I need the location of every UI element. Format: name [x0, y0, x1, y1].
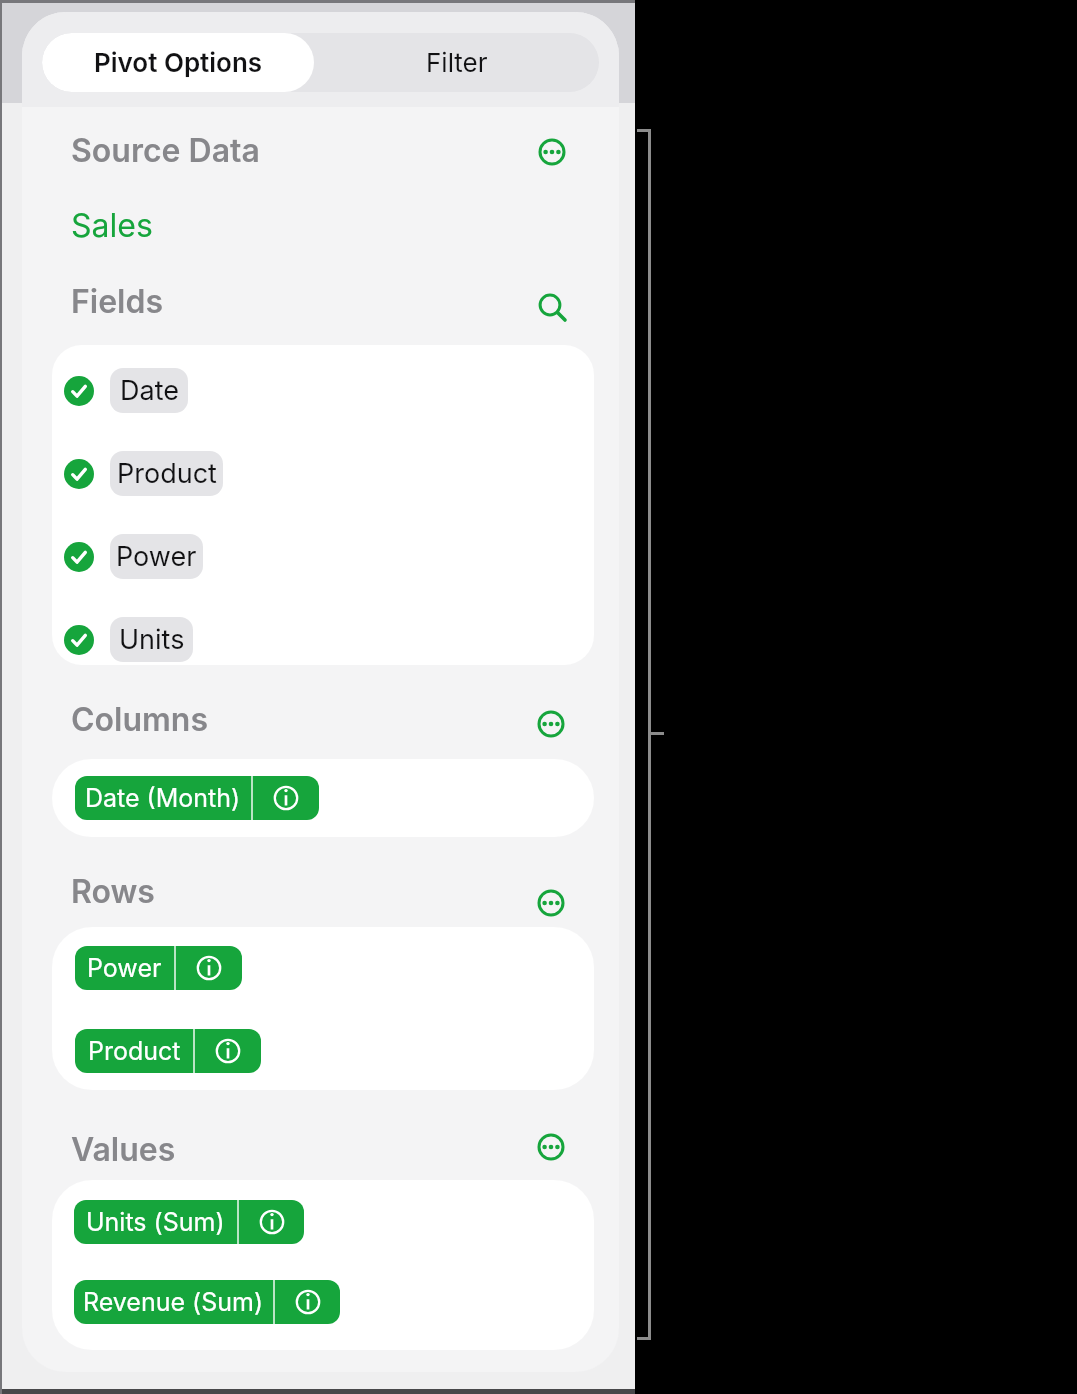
- button[interactable]: [536, 136, 568, 168]
- staticText: Units (Sum): [86, 1207, 225, 1237]
- button[interactable]: Date (Month): [75, 776, 319, 820]
- button[interactable]: Product: [75, 1029, 261, 1073]
- staticText: Date: [120, 374, 179, 407]
- button[interactable]: [535, 1131, 567, 1163]
- button[interactable]: [535, 887, 567, 919]
- staticText: Source Data: [71, 131, 260, 170]
- staticText: Pivot Options: [94, 47, 263, 78]
- staticText: Rows: [71, 872, 155, 911]
- staticText: Filter: [426, 47, 488, 78]
- staticText: Power: [116, 540, 197, 573]
- button[interactable]: [535, 708, 567, 740]
- staticText: Units: [119, 623, 185, 656]
- staticText: Revenue (Sum): [83, 1287, 264, 1317]
- button[interactable]: Filter: [314, 33, 599, 92]
- staticText: Sales: [71, 206, 153, 245]
- button[interactable]: Product: [110, 451, 223, 496]
- staticText: Date (Month): [85, 783, 241, 813]
- button[interactable]: [536, 291, 570, 325]
- button[interactable]: Power: [110, 534, 203, 579]
- button[interactable]: Power: [75, 946, 242, 990]
- staticText: Product: [88, 1036, 181, 1066]
- button[interactable]: Date: [110, 368, 188, 413]
- staticText: Product: [117, 457, 217, 490]
- button[interactable]: Units (Sum): [74, 1200, 304, 1244]
- button[interactable]: Revenue (Sum): [74, 1280, 340, 1324]
- button[interactable]: Pivot Options: [42, 33, 314, 92]
- staticText: Columns: [71, 700, 208, 739]
- staticText: Power: [87, 953, 162, 983]
- staticText: Values: [71, 1130, 176, 1169]
- button[interactable]: Units: [110, 617, 193, 662]
- button[interactable]: [60, 200, 460, 250]
- staticText: Fields: [71, 282, 164, 321]
